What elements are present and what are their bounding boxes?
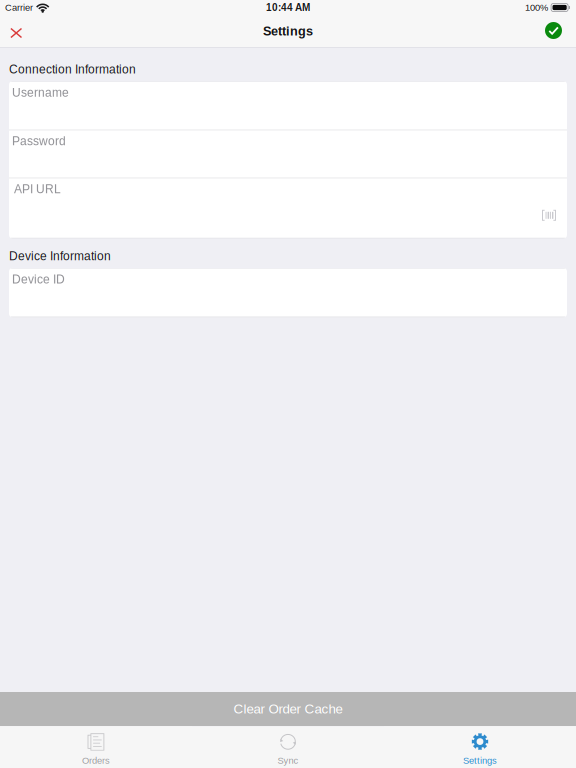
staticText: Device ID [12,273,65,286]
button[interactable]: Sync [192,732,384,768]
staticText: Carrier [5,2,33,13]
button[interactable]: Device ID [9,269,567,317]
button[interactable]: Save [533,15,576,47]
button[interactable]: Username [9,82,567,130]
button[interactable]: Settings [384,732,576,768]
staticText: Sync [277,755,298,766]
staticText: 100% [525,2,548,13]
staticText: Settings [463,755,497,766]
staticText: Clear Order Cache [233,702,342,716]
button[interactable]: Close [0,15,34,47]
button[interactable]: Password [9,130,567,178]
staticText: Settings [263,24,313,38]
button[interactable]: API URL [9,178,567,238]
staticText: Device Information [9,249,111,263]
staticText: Password [12,134,66,148]
staticText: API URL [14,182,61,196]
button[interactable]: Orders [0,732,192,768]
button[interactable]: Clear Order Cache [0,692,576,726]
staticText: Username [12,86,69,99]
staticText: Connection Information [9,63,136,76]
staticText: Orders [82,755,110,766]
staticText: 10:44 AM [266,2,310,13]
